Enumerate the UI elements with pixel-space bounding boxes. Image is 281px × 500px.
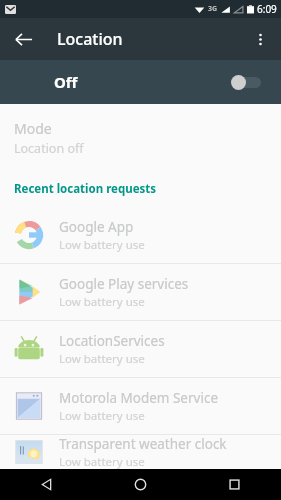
button[interactable]: Google Play services bbox=[0, 264, 281, 320]
staticText: LocationServices bbox=[59, 332, 165, 350]
button[interactable]: Back bbox=[0, 469, 93, 500]
staticText: Location bbox=[57, 28, 123, 50]
staticText: Recent location requests bbox=[14, 181, 157, 197]
button[interactable]: Google App bbox=[0, 207, 281, 263]
staticText: Location off bbox=[14, 140, 84, 157]
staticText: Google App bbox=[59, 218, 134, 236]
button[interactable]: Recent apps bbox=[187, 469, 281, 500]
button[interactable]: Back bbox=[6, 22, 40, 56]
staticText: Off bbox=[54, 72, 78, 92]
staticText: Transparent weather clock bbox=[59, 435, 227, 453]
staticText: Low battery use bbox=[59, 454, 145, 469]
button[interactable]: Mode bbox=[0, 105, 281, 167]
button[interactable]: Motorola Modem Service bbox=[0, 378, 281, 434]
staticText: Low battery use bbox=[59, 351, 145, 367]
staticText: Low battery use bbox=[59, 294, 145, 310]
button[interactable]: More options bbox=[243, 22, 277, 56]
staticText: Low battery use bbox=[59, 237, 145, 253]
button[interactable]: Home bbox=[93, 469, 187, 500]
staticText: Motorola Modem Service bbox=[59, 389, 218, 407]
button[interactable]: LocationServices bbox=[0, 321, 281, 377]
staticText: Google Play services bbox=[59, 275, 189, 293]
button[interactable]: Off bbox=[0, 60, 281, 104]
button[interactable]: Transparent weather clock bbox=[0, 435, 281, 469]
staticText: Mode bbox=[14, 119, 52, 138]
staticText: 6:09 bbox=[257, 2, 277, 16]
staticText: Low battery use bbox=[59, 408, 145, 424]
staticText: 3G bbox=[208, 4, 218, 14]
